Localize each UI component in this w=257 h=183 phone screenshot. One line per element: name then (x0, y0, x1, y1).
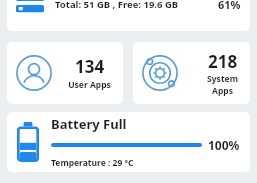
staticText: Battery Full (51, 115, 127, 133)
staticText: Apps (212, 85, 233, 97)
button[interactable]: User apps (7, 42, 123, 104)
other: User apps (15, 54, 53, 92)
button[interactable]: System apps (133, 42, 250, 104)
staticText: 100% (208, 137, 240, 153)
other: Storage (16, 0, 44, 19)
other: System apps (141, 54, 179, 92)
staticText: System (207, 73, 238, 85)
other: Battery (17, 122, 39, 162)
staticText: User Apps (68, 79, 111, 91)
button[interactable]: Battery (7, 112, 250, 172)
staticText: Temperature : 29 °C (51, 157, 134, 169)
staticText: Total: 51 GB , Free: 19.6 GB (55, 0, 179, 11)
staticText: 61% (218, 0, 241, 12)
staticText: 134 (75, 55, 105, 78)
staticText: 218 (208, 50, 238, 73)
button[interactable]: Storage (7, 0, 250, 31)
